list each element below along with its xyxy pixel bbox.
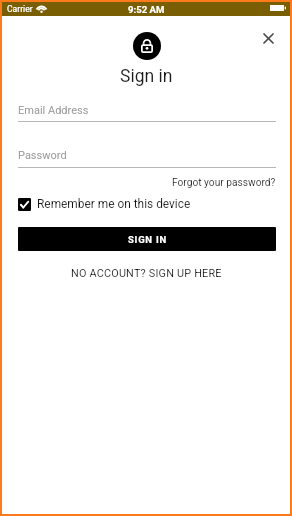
button[interactable]: SIGN IN [18,227,276,251]
staticText: SIGN IN [128,234,167,245]
staticText: Forgot your password? [172,177,276,189]
button[interactable]: Forgot your password? [172,177,276,189]
staticText: Sign in [120,66,173,87]
button[interactable]: Close [256,26,280,50]
button[interactable]: NO ACCOUNT? SIGN UP HERE [71,267,222,280]
staticText: NO ACCOUNT? SIGN UP HERE [71,267,222,280]
staticText: 9:52 AM [128,4,165,15]
button[interactable]: Remember me on this device [18,197,191,211]
staticText: Password [18,149,67,162]
staticText: Remember me on this device [37,197,191,211]
staticText: Carrier [7,4,33,14]
staticText: Email Address [18,104,89,117]
